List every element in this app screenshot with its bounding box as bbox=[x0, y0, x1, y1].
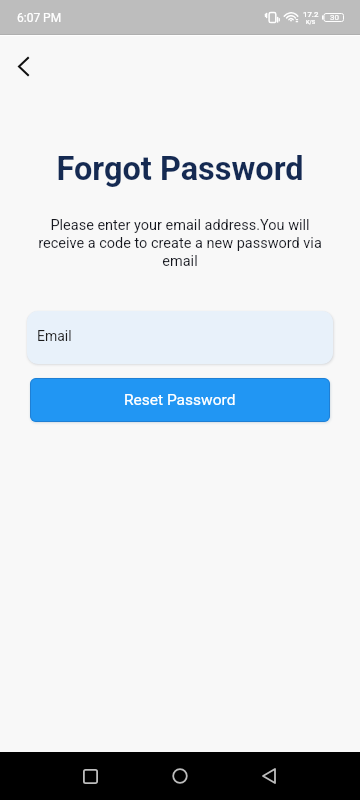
staticText: Email bbox=[37, 328, 72, 344]
button[interactable]: Home bbox=[156, 752, 204, 800]
staticText: Reset Password bbox=[124, 391, 236, 409]
button[interactable]: Reset Password bbox=[30, 378, 330, 422]
staticText: 6:07 PM bbox=[17, 11, 62, 25]
button[interactable]: Email bbox=[27, 311, 333, 364]
staticText: Forgot Password bbox=[0, 150, 360, 188]
button[interactable]: Back bbox=[244, 752, 293, 800]
staticText: K/S bbox=[306, 19, 316, 26]
staticText: 17.2 bbox=[303, 10, 319, 19]
staticText: 30 bbox=[330, 13, 339, 22]
staticText: Please enter your email address.You will… bbox=[32, 217, 328, 270]
button[interactable]: Recent apps bbox=[66, 752, 115, 800]
button[interactable]: Back bbox=[6, 49, 40, 83]
